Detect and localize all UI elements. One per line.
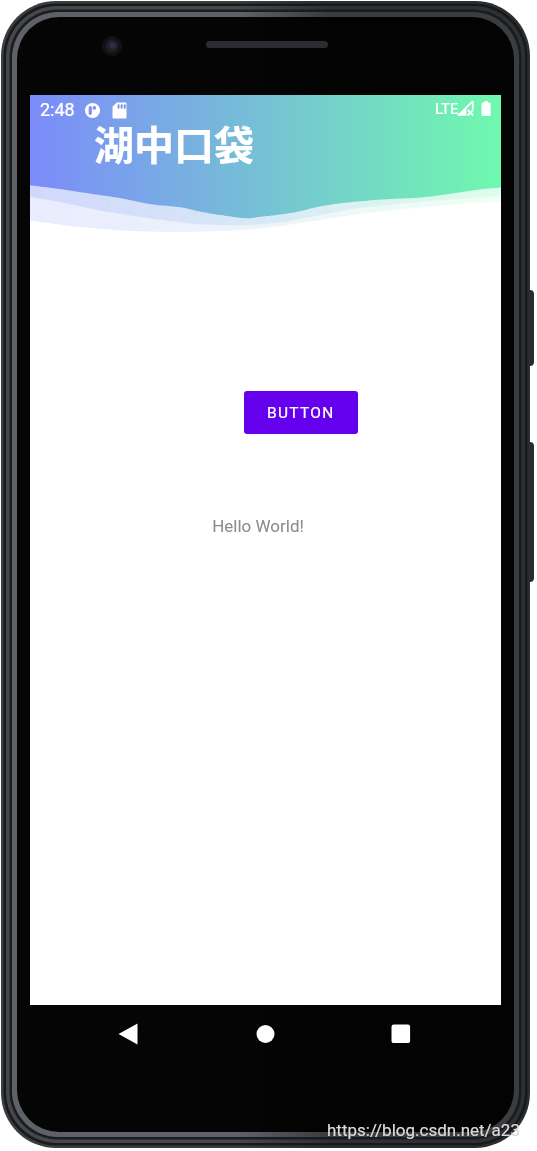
staticText: LTE (435, 100, 459, 118)
staticText: Hello World! (212, 516, 304, 536)
staticText: 2:48 (40, 99, 75, 120)
staticText: 湖中口袋 (94, 114, 254, 172)
staticText: BUTTON (267, 404, 335, 422)
button[interactable]: BUTTON (244, 391, 358, 434)
staticText: https://blog.csdn.net/a23 (327, 1120, 520, 1140)
